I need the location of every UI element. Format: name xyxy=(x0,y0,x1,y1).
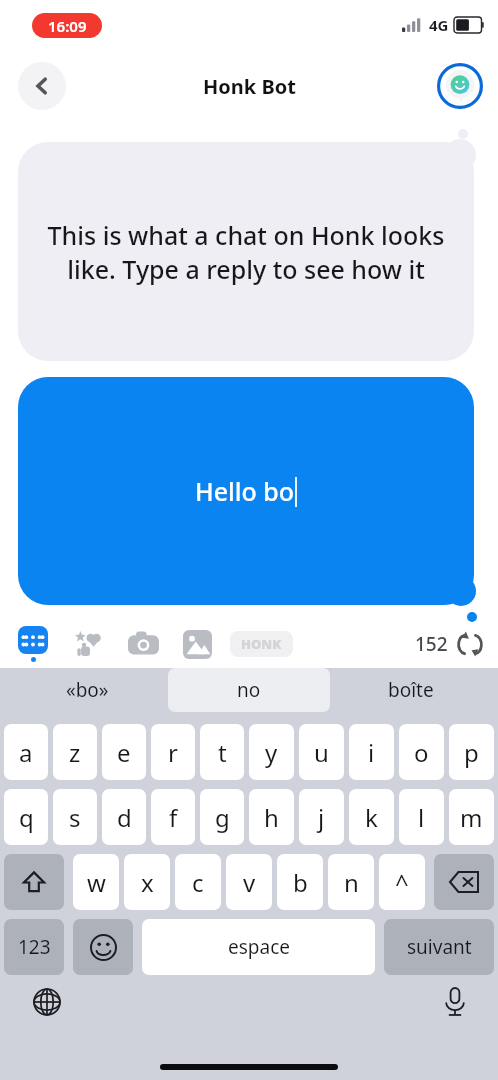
staticText: l xyxy=(418,801,425,834)
button[interactable]: no xyxy=(168,668,330,712)
staticText: y xyxy=(265,736,278,769)
staticText: e xyxy=(117,736,131,769)
staticText: i xyxy=(368,736,375,769)
button[interactable]: This is what a chat on Honk looks like. … xyxy=(18,142,474,361)
staticText: o xyxy=(414,736,429,769)
staticText: Honk Bot xyxy=(203,73,296,100)
staticText: p xyxy=(464,736,479,769)
staticText: 123 xyxy=(18,934,51,960)
button[interactable]: Keyboard xyxy=(18,626,48,662)
button[interactable]: Shift xyxy=(4,854,64,910)
button[interactable]: v xyxy=(226,854,272,910)
button[interactable]: w xyxy=(73,854,119,910)
staticText: «bo» xyxy=(66,677,109,703)
staticText: boîte xyxy=(388,677,434,703)
button[interactable]: n xyxy=(328,854,374,910)
button[interactable]: «bo» xyxy=(6,668,168,712)
button[interactable]: h xyxy=(249,789,294,845)
staticText: suivant xyxy=(407,934,472,960)
staticText: r xyxy=(168,736,178,769)
staticText: 16:09 xyxy=(48,16,87,36)
button[interactable]: HONK xyxy=(230,631,293,657)
staticText: d xyxy=(117,801,132,834)
staticText: b xyxy=(293,866,308,899)
button[interactable]: Switch camera xyxy=(456,630,484,658)
button[interactable]: Hello bo xyxy=(18,377,474,605)
button[interactable]: k xyxy=(349,789,394,845)
button[interactable]: espace xyxy=(142,919,375,975)
staticText: g xyxy=(215,801,230,834)
button[interactable]: ^ xyxy=(379,854,425,910)
button[interactable]: r xyxy=(151,724,195,780)
staticText: 4G xyxy=(429,15,449,35)
button[interactable]: s xyxy=(53,789,97,845)
button[interactable]: Camera xyxy=(126,627,160,661)
staticText: f xyxy=(169,801,178,834)
button[interactable]: y xyxy=(249,724,294,780)
button[interactable]: g xyxy=(200,789,244,845)
button[interactable]: Emoji xyxy=(73,919,133,975)
button[interactable]: f xyxy=(151,789,195,845)
staticText: espace xyxy=(228,934,290,960)
button[interactable]: z xyxy=(53,724,97,780)
button[interactable]: j xyxy=(299,789,344,845)
staticText: k xyxy=(365,801,378,834)
staticText: a xyxy=(19,736,33,769)
button[interactable]: Back xyxy=(18,62,66,110)
staticText: j xyxy=(318,801,325,834)
button[interactable]: c xyxy=(175,854,221,910)
staticText: m xyxy=(460,801,483,834)
staticText: w xyxy=(87,866,106,899)
button[interactable]: Photos xyxy=(180,627,214,661)
button[interactable]: t xyxy=(200,724,244,780)
button[interactable]: i xyxy=(349,724,394,780)
staticText: h xyxy=(264,801,279,834)
button[interactable]: Change keyboard language xyxy=(30,985,64,1019)
staticText: v xyxy=(243,866,256,899)
button[interactable]: 123 xyxy=(4,919,64,975)
button[interactable]: b xyxy=(277,854,323,910)
staticText: t xyxy=(218,736,227,769)
button[interactable]: m xyxy=(449,789,494,845)
button[interactable]: Profile xyxy=(436,62,484,110)
staticText: u xyxy=(314,736,329,769)
button[interactable]: Backspace xyxy=(434,854,494,910)
staticText: HONK xyxy=(241,635,282,653)
staticText: 152 xyxy=(415,631,448,657)
staticText: c xyxy=(192,866,204,899)
button[interactable]: d xyxy=(102,789,146,845)
staticText: n xyxy=(344,866,359,899)
button[interactable]: x xyxy=(124,854,170,910)
staticText: q xyxy=(19,801,34,834)
button[interactable]: u xyxy=(299,724,344,780)
button[interactable]: p xyxy=(449,724,494,780)
button[interactable]: suivant xyxy=(384,919,494,975)
button[interactable]: o xyxy=(399,724,444,780)
staticText: ^ xyxy=(395,866,409,899)
button[interactable]: e xyxy=(102,724,146,780)
button[interactable]: l xyxy=(399,789,444,845)
button[interactable]: Voice input xyxy=(438,985,472,1019)
button[interactable]: Reactions xyxy=(70,627,104,661)
staticText: x xyxy=(141,866,154,899)
button[interactable]: a xyxy=(4,724,48,780)
button[interactable]: boîte xyxy=(330,668,492,712)
button[interactable]: q xyxy=(4,789,48,845)
staticText: z xyxy=(69,736,81,769)
staticText: s xyxy=(69,801,81,834)
staticText: This is what a chat on Honk looks like. … xyxy=(36,218,456,286)
staticText: Hello bo xyxy=(195,474,295,508)
staticText: no xyxy=(237,677,261,703)
